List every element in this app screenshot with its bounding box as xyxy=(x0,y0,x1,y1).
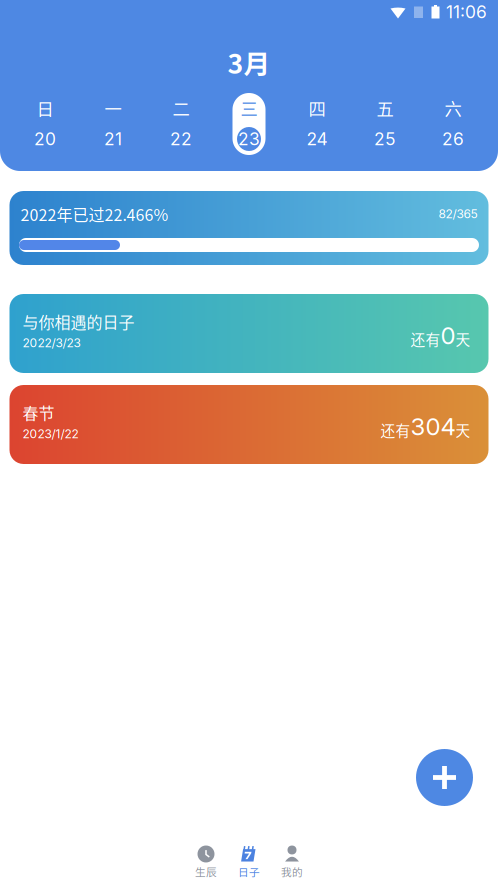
staticText: 一 xyxy=(104,95,121,121)
staticText: 二 xyxy=(172,95,189,121)
button[interactable]: 我的 xyxy=(271,844,313,880)
button[interactable]: 三 xyxy=(215,93,283,155)
staticText: 三 xyxy=(240,95,257,121)
button[interactable]: 六 xyxy=(419,93,487,155)
staticText: 3月 xyxy=(227,43,270,81)
staticText: 11:06 xyxy=(446,1,487,22)
button[interactable]: 二 xyxy=(147,93,215,155)
staticText: 生辰 xyxy=(195,864,217,879)
staticText: 日子 xyxy=(238,864,260,879)
staticText: 26 xyxy=(442,128,464,149)
staticText: 25 xyxy=(374,128,396,149)
staticText: 20 xyxy=(34,128,56,149)
staticText: 我的 xyxy=(281,864,303,879)
button[interactable]: 日 xyxy=(11,93,79,155)
staticText: 304 xyxy=(410,412,455,441)
staticText: 天 xyxy=(455,328,470,349)
staticText: 2023/1/22 xyxy=(22,427,78,441)
staticText: 天 xyxy=(455,419,470,440)
staticText: 2022/3/23 xyxy=(22,336,80,350)
staticText: 五 xyxy=(376,95,393,121)
button[interactable]: Add xyxy=(416,749,473,806)
button[interactable]: 2022年已过22.466% xyxy=(9,191,488,265)
staticText: 还有 xyxy=(410,328,440,349)
button[interactable]: 一 xyxy=(79,93,147,155)
button[interactable]: 日子 xyxy=(228,844,270,880)
button[interactable]: 与你相遇的日子 xyxy=(9,294,488,373)
staticText: 还有 xyxy=(380,419,410,440)
staticText: 日 xyxy=(36,95,53,121)
staticText: 22 xyxy=(170,128,192,149)
button[interactable]: 生辰 xyxy=(185,844,227,880)
staticText: 春节 xyxy=(22,401,54,424)
staticText: 0 xyxy=(440,321,455,350)
button[interactable]: 五 xyxy=(351,93,419,155)
button[interactable]: 四 xyxy=(283,93,351,155)
button[interactable]: 春节 xyxy=(9,385,488,464)
staticText: 21 xyxy=(104,128,122,149)
staticText: 2022年已过22.466% xyxy=(20,202,168,226)
staticText: 23 xyxy=(238,128,260,149)
staticText: 四 xyxy=(308,95,325,121)
staticText: 六 xyxy=(444,95,461,121)
staticText: 与你相遇的日子 xyxy=(22,310,134,333)
staticText: 82/365 xyxy=(438,207,477,221)
staticText: 24 xyxy=(306,128,327,149)
